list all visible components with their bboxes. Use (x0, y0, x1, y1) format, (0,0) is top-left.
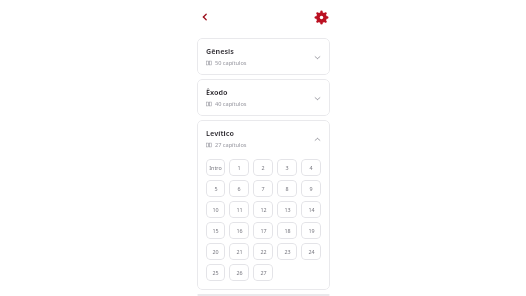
staticText: 25 (212, 269, 219, 276)
staticText: 9 (309, 185, 313, 192)
staticText: 24 (308, 248, 315, 255)
staticText: 3 (285, 164, 289, 171)
button[interactable]: 25 (206, 264, 225, 281)
button[interactable]: 3 (277, 159, 297, 176)
staticText: 12 (260, 206, 267, 213)
button[interactable]: 24 (301, 243, 321, 260)
button[interactable]: 4 (301, 159, 321, 176)
button[interactable]: 11 (229, 201, 249, 218)
button[interactable]: 12 (253, 201, 273, 218)
staticText: 4 (309, 164, 313, 171)
button[interactable]: Intro (206, 159, 225, 176)
staticText: Êxodo (206, 87, 228, 97)
staticText: 17 (260, 227, 267, 234)
staticText: 6 (237, 185, 241, 192)
button[interactable]: 20 (206, 243, 225, 260)
button[interactable]: 19 (301, 222, 321, 239)
button[interactable]: 2 (253, 159, 273, 176)
staticText: 13 (284, 206, 291, 213)
staticText: 16 (236, 227, 243, 234)
staticText: 20 (212, 248, 219, 255)
button[interactable]: 9 (301, 180, 321, 197)
staticText: 1 (237, 164, 241, 171)
staticText: 27 (260, 269, 267, 276)
button[interactable]: 10 (206, 201, 225, 218)
staticText: Levítico (206, 128, 234, 138)
staticText: 8 (285, 185, 289, 192)
button[interactable]: 5 (206, 180, 225, 197)
button[interactable]: 21 (229, 243, 249, 260)
button[interactable]: Levítico (197, 120, 330, 157)
button[interactable]: Gênesis (197, 38, 330, 75)
button[interactable]: 13 (277, 201, 297, 218)
button[interactable]: 22 (253, 243, 273, 260)
button[interactable]: 1 (229, 159, 249, 176)
staticText: 19 (308, 227, 315, 234)
staticText: 2 (261, 164, 265, 171)
staticText: 23 (284, 248, 291, 255)
staticText: 27 capítulos (215, 141, 247, 149)
button[interactable]: 14 (301, 201, 321, 218)
button[interactable]: 23 (277, 243, 297, 260)
staticText: 40 capítulos (215, 100, 247, 108)
staticText: 15 (212, 227, 219, 234)
staticText: 11 (236, 206, 243, 213)
staticText: 18 (284, 227, 291, 234)
button[interactable]: 27 (253, 264, 273, 281)
staticText: 21 (236, 248, 243, 255)
staticText: Gênesis (206, 46, 234, 56)
button[interactable]: 17 (253, 222, 273, 239)
staticText: 22 (260, 248, 267, 255)
staticText: Intro (209, 164, 222, 171)
button[interactable]: 18 (277, 222, 297, 239)
staticText: 5 (214, 185, 218, 192)
button[interactable]: 16 (229, 222, 249, 239)
button[interactable]: Back (197, 9, 213, 25)
staticText: 7 (261, 185, 265, 192)
button[interactable]: 15 (206, 222, 225, 239)
button[interactable]: 8 (277, 180, 297, 197)
button[interactable]: 26 (229, 264, 249, 281)
staticText: 50 capítulos (215, 59, 247, 67)
button[interactable]: 7 (253, 180, 273, 197)
staticText: 14 (308, 206, 315, 213)
button[interactable]: Êxodo (197, 79, 330, 116)
button[interactable]: Settings (312, 8, 330, 26)
button[interactable]: 6 (229, 180, 249, 197)
staticText: 10 (212, 206, 219, 213)
staticText: 26 (236, 269, 243, 276)
